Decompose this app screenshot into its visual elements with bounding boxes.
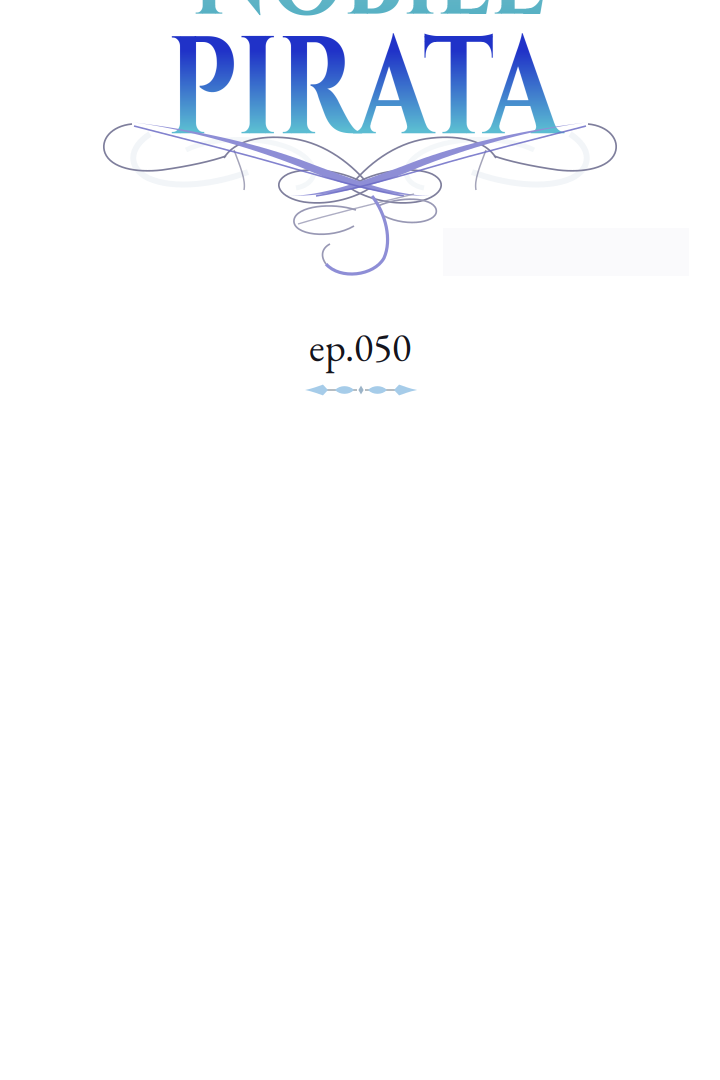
staticText: ep.050: [309, 321, 411, 373]
